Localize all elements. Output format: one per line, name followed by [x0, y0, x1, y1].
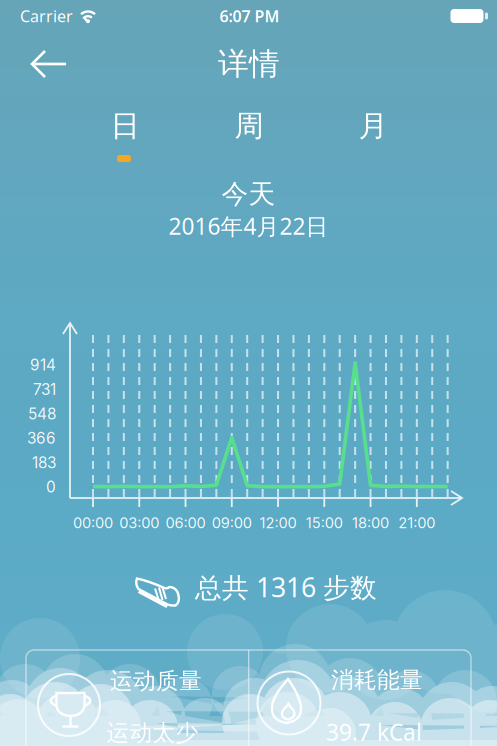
- staticText: 548: [28, 405, 56, 423]
- staticText: 366: [27, 429, 56, 447]
- staticText: 日: [110, 108, 139, 144]
- button[interactable]: 运动质量: [26, 650, 248, 746]
- staticText: 914: [30, 356, 56, 374]
- staticText: 12:00: [259, 514, 296, 532]
- staticText: 00:00: [73, 514, 113, 532]
- button[interactable]: 日: [90, 109, 160, 143]
- staticText: 0: [46, 478, 56, 496]
- staticText: 月: [358, 108, 387, 144]
- staticText: 03:00: [119, 514, 159, 532]
- staticText: 详情: [218, 45, 280, 83]
- staticText: 39.7 kCal: [326, 717, 422, 746]
- button[interactable]: Back: [30, 50, 68, 78]
- button[interactable]: 周: [214, 109, 284, 143]
- staticText: 运动质量: [110, 667, 202, 695]
- staticText: 消耗能量: [331, 666, 423, 694]
- staticText: 09:00: [212, 514, 252, 532]
- staticText: 周: [234, 108, 263, 144]
- staticText: 总共 1316 步数: [195, 569, 377, 605]
- button[interactable]: 消耗能量: [249, 650, 471, 746]
- staticText: 21:00: [398, 514, 435, 532]
- staticText: 15:00: [306, 514, 343, 532]
- staticText: 今天: [221, 178, 275, 210]
- button[interactable]: 月: [338, 109, 408, 143]
- staticText: 183: [32, 453, 56, 472]
- staticText: 18:00: [352, 514, 389, 532]
- staticText: 731: [33, 380, 56, 399]
- staticText: 06:00: [165, 514, 205, 532]
- staticText: 运动太少: [106, 719, 198, 746]
- staticText: Carrier: [20, 5, 73, 27]
- staticText: 6:07 PM: [219, 5, 279, 27]
- staticText: 2016年4月22日: [168, 211, 328, 241]
